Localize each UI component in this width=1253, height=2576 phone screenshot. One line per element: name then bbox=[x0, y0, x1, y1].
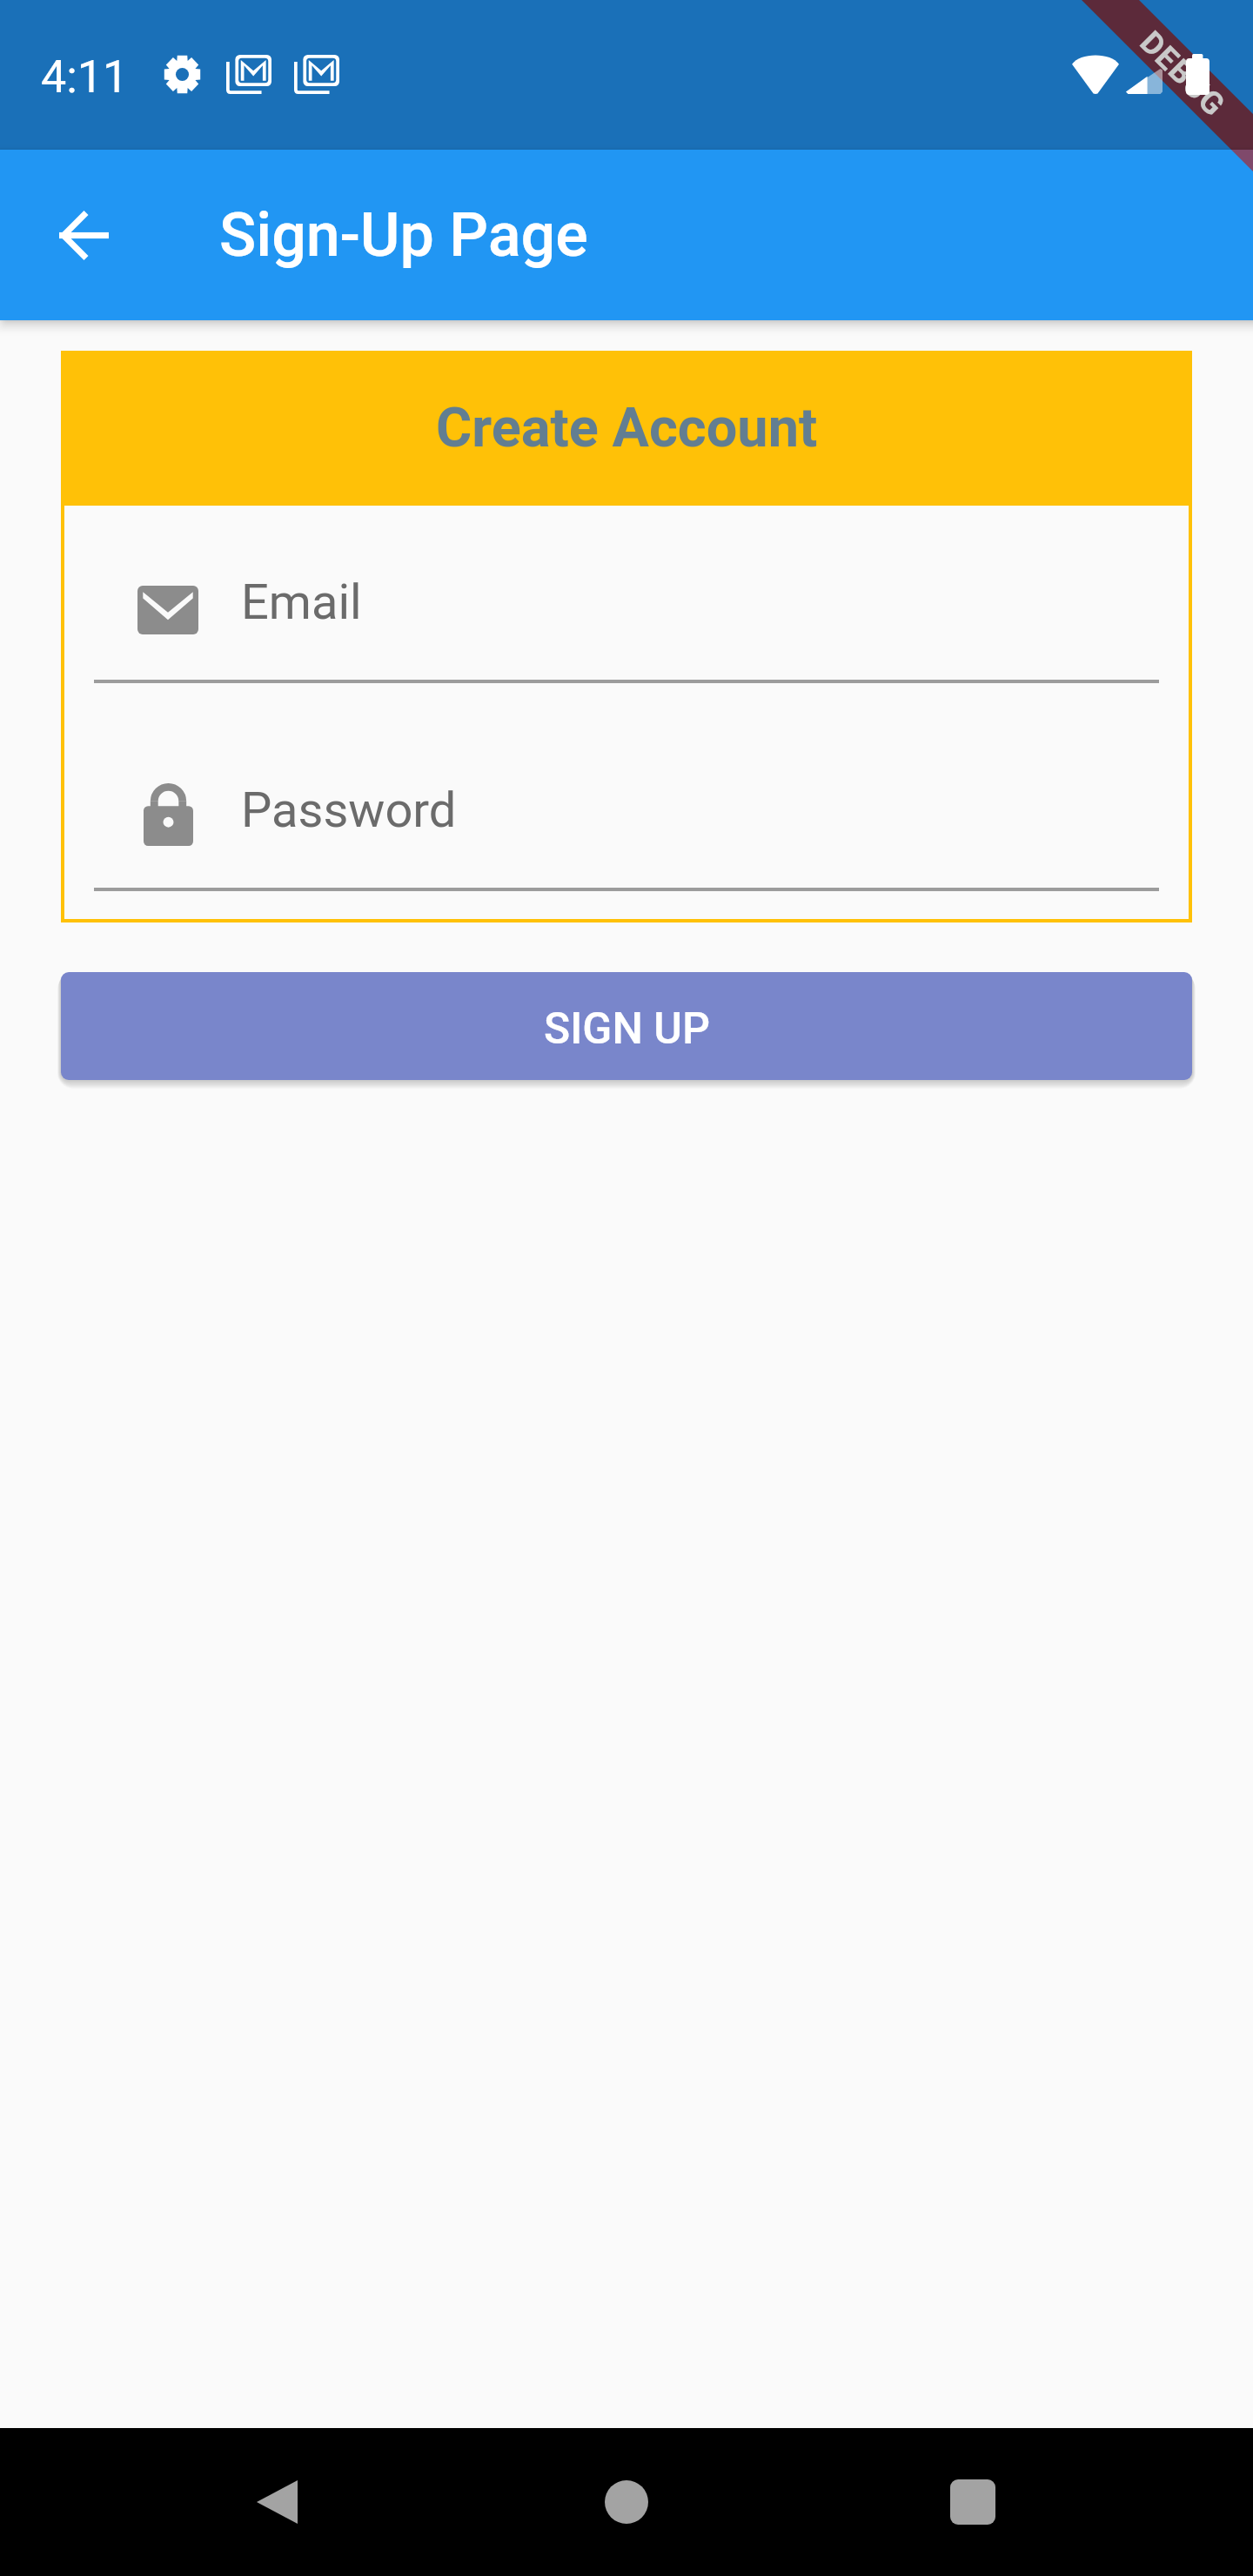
button[interactable]: Home bbox=[557, 2432, 696, 2572]
button[interactable]: Password bbox=[64, 683, 1189, 891]
staticText: Email bbox=[241, 574, 362, 631]
staticText: Create Account bbox=[436, 396, 818, 460]
staticText: DEBUG bbox=[1133, 24, 1232, 124]
button[interactable]: SIGN UP bbox=[61, 972, 1192, 1080]
button[interactable]: Recent apps bbox=[903, 2432, 1042, 2572]
button[interactable]: Back bbox=[206, 2432, 345, 2572]
staticText: Sign-Up Page bbox=[219, 199, 588, 271]
button[interactable]: Navigate up bbox=[35, 186, 132, 284]
staticText: SIGN UP bbox=[544, 1003, 710, 1055]
staticText: Password bbox=[241, 782, 457, 839]
staticText: 4:11 bbox=[41, 50, 129, 104]
button[interactable]: Email bbox=[64, 506, 1189, 683]
